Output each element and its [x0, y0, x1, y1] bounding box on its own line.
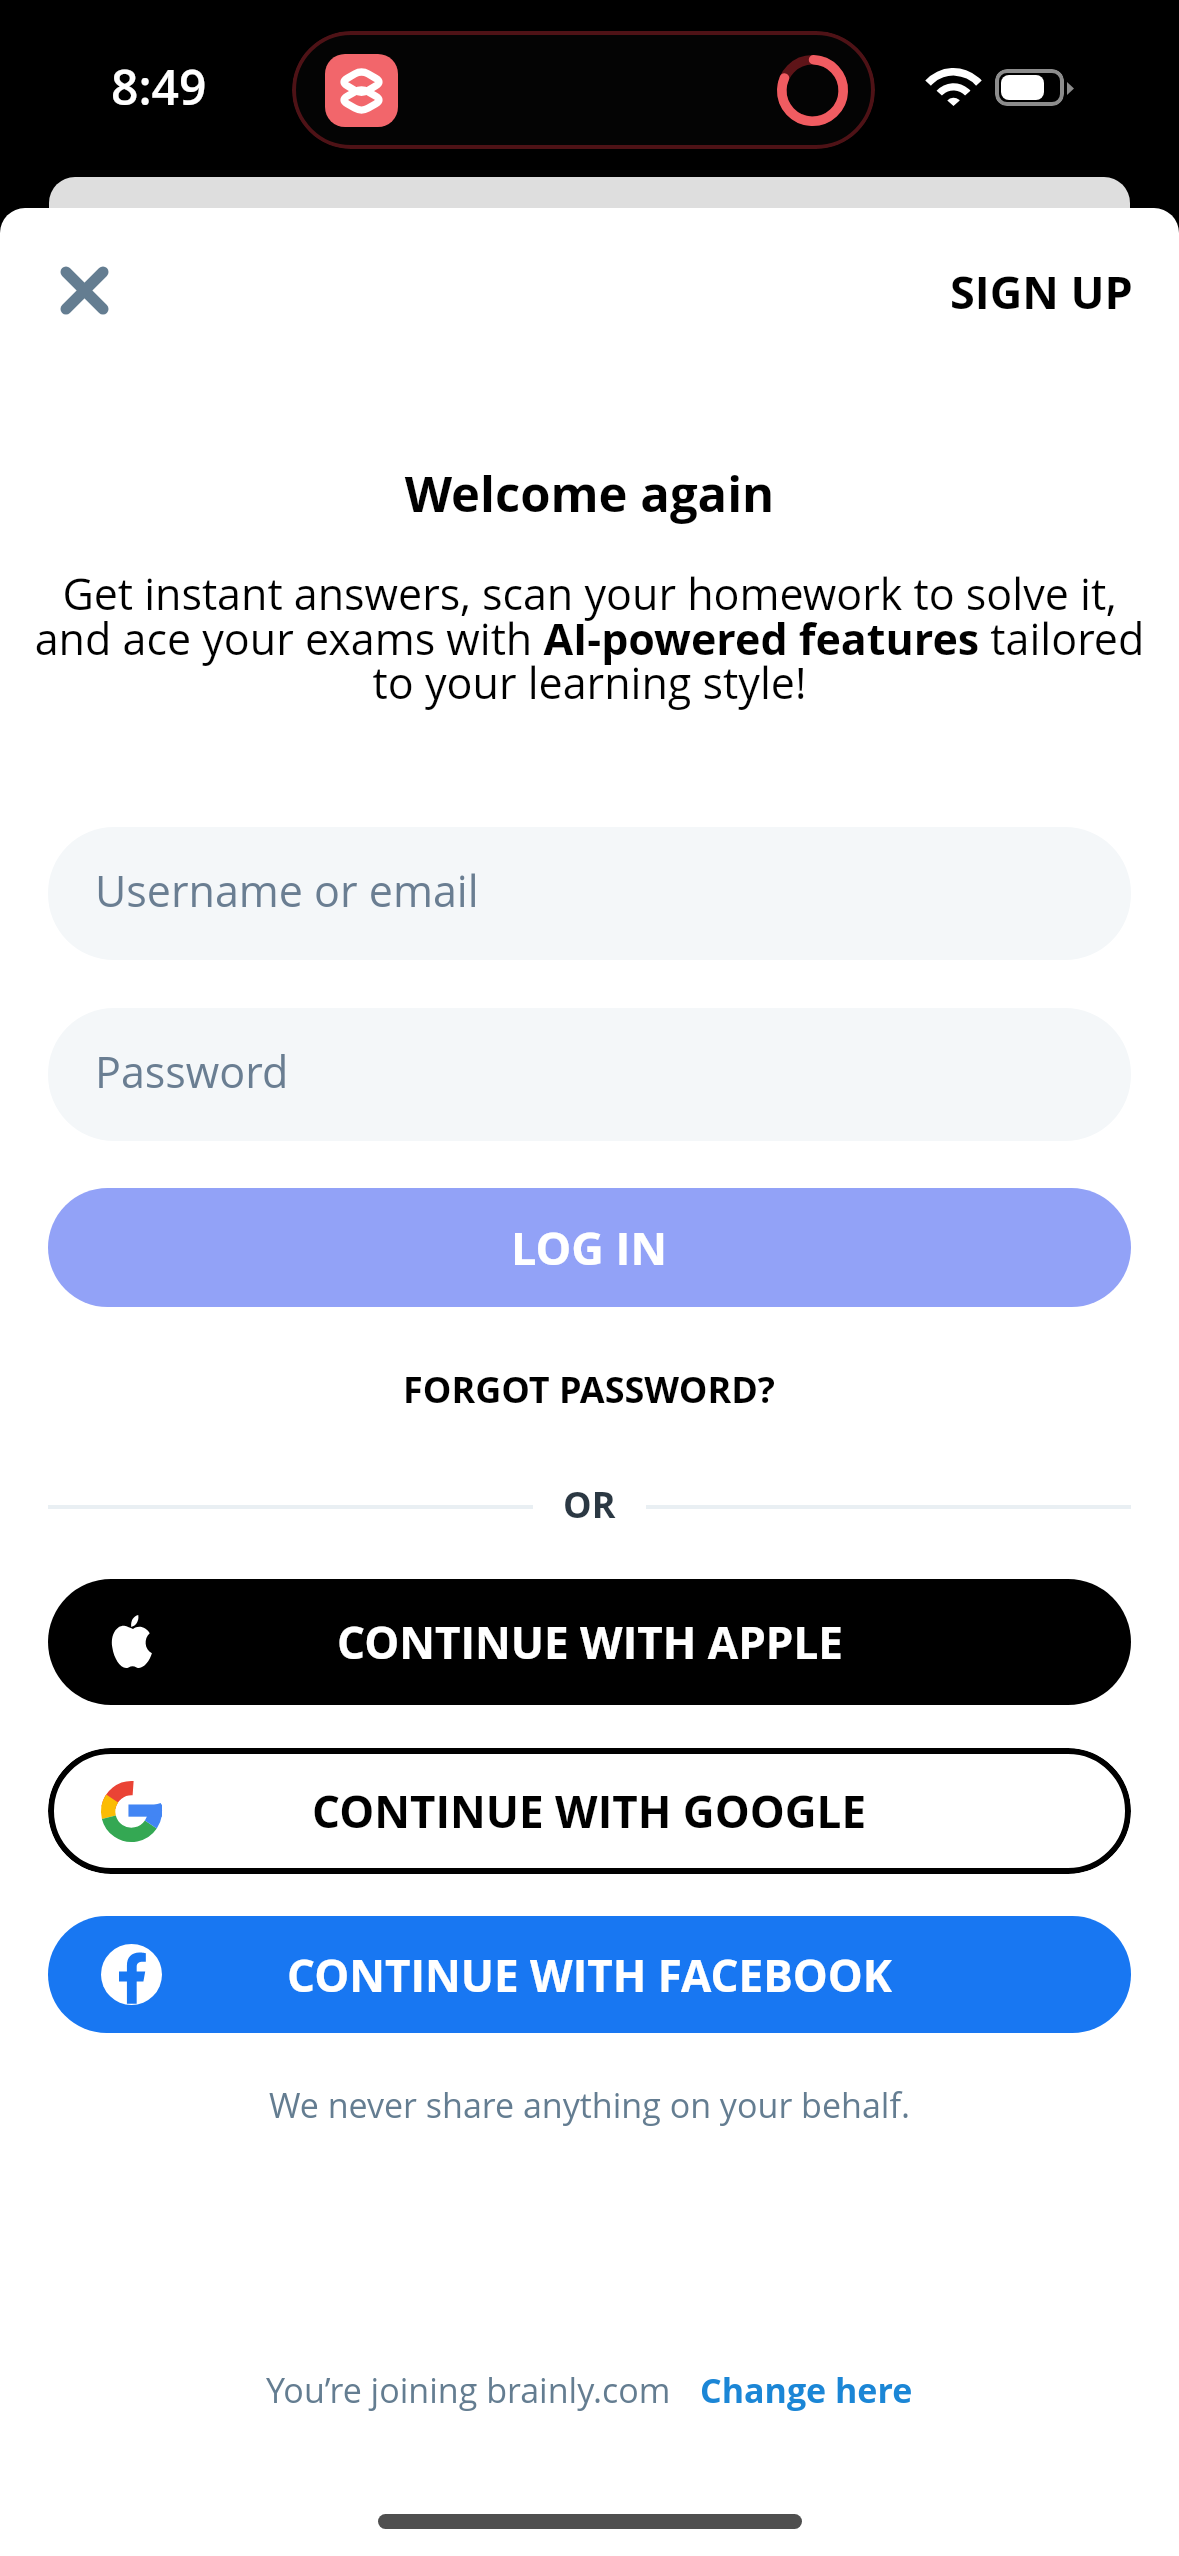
staticText: CONTINUE WITH FACEBOOK — [287, 1945, 893, 2005]
staticText: Welcome again — [0, 460, 1179, 527]
staticText: CONTINUE WITH APPLE — [337, 1612, 843, 1672]
staticText: You’re joining brainly.com — [266, 2367, 671, 2413]
button[interactable]: Close — [36, 242, 132, 338]
button[interactable]: SIGN UP — [930, 243, 1153, 340]
button[interactable]: CONTINUE WITH GOOGLE — [48, 1748, 1131, 1874]
button[interactable]: Change here — [700, 2367, 913, 2413]
staticText: 8:49 — [111, 54, 207, 119]
button[interactable]: LOG IN — [48, 1188, 1131, 1307]
staticText: Password — [95, 1042, 289, 1101]
staticText: CONTINUE WITH GOOGLE — [312, 1781, 867, 1841]
staticText: OR — [563, 1480, 616, 1529]
staticText: FORGOT PASSWORD? — [403, 1365, 776, 1414]
button[interactable]: FORGOT PASSWORD? — [383, 1359, 796, 1420]
staticText: Get instant answers, scan your homework … — [20, 564, 1159, 712]
staticText: Username or email — [95, 861, 479, 920]
button[interactable]: CONTINUE WITH APPLE — [48, 1579, 1131, 1705]
staticText: SIGN UP — [950, 261, 1133, 322]
staticText: LOG IN — [511, 1217, 668, 1278]
button[interactable]: Username or email — [48, 827, 1131, 960]
staticText: Change here — [700, 2367, 913, 2413]
button[interactable]: Password — [48, 1008, 1131, 1141]
button[interactable]: CONTINUE WITH FACEBOOK — [48, 1916, 1131, 2033]
staticText: We never share anything on your behalf. — [0, 2082, 1179, 2128]
